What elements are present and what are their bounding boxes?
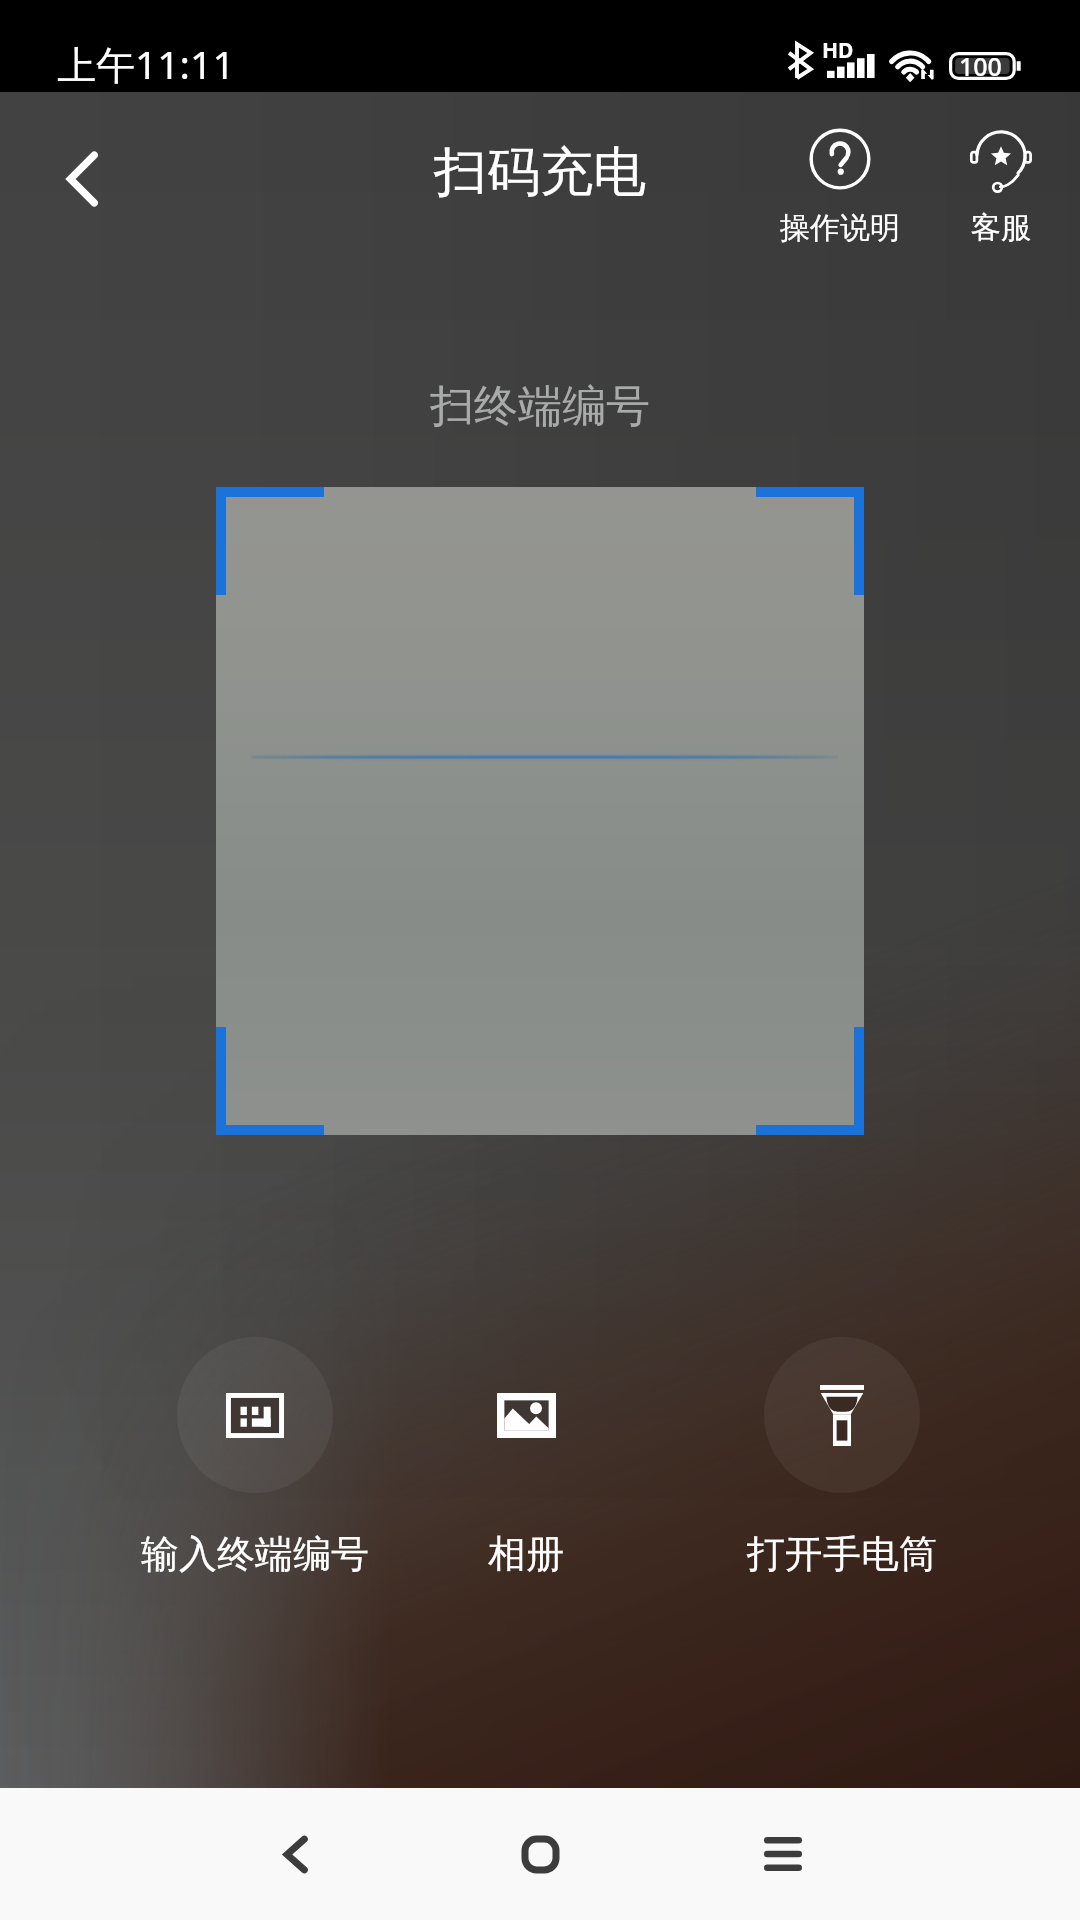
button[interactable]: Back bbox=[26, 124, 136, 234]
staticText: HD bbox=[822, 36, 854, 65]
button[interactable]: Recents bbox=[718, 1788, 848, 1920]
staticText: 客服 bbox=[971, 209, 1031, 247]
button[interactable]: 客服 bbox=[921, 119, 1080, 247]
button[interactable]: System back bbox=[230, 1788, 360, 1920]
staticText: 操作说明 bbox=[780, 209, 900, 247]
button[interactable]: 操作说明 bbox=[760, 119, 920, 247]
staticText: 扫码充电 bbox=[434, 139, 646, 206]
staticText: 上午11:11 bbox=[57, 37, 235, 90]
button[interactable]: 输入终端编号 bbox=[105, 1337, 405, 1578]
staticText: 打开手电筒 bbox=[747, 1530, 937, 1578]
staticText: 扫终端编号 bbox=[430, 379, 650, 434]
button[interactable]: 打开手电筒 bbox=[692, 1337, 992, 1578]
staticText: 100 bbox=[959, 49, 1002, 83]
button[interactable]: 相册 bbox=[376, 1337, 676, 1578]
staticText: 输入终端编号 bbox=[141, 1530, 369, 1578]
staticText: 相册 bbox=[488, 1530, 564, 1578]
button[interactable]: Home bbox=[475, 1788, 605, 1920]
